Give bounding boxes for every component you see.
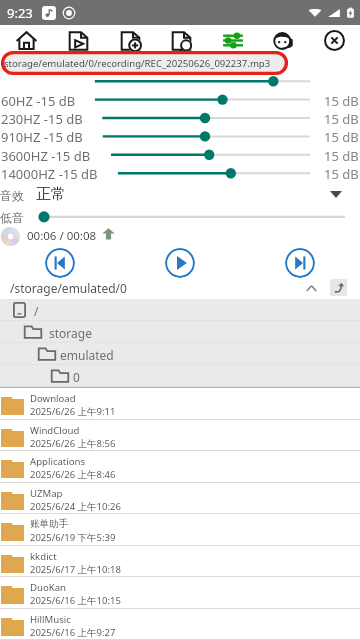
staticText: 15 dB	[324, 165, 359, 183]
button[interactable]: 0	[0, 365, 360, 387]
staticText: 2025/6/17 上午10:18	[30, 563, 121, 576]
button[interactable]: Play file	[52, 25, 104, 56]
staticText: WindCloud	[30, 424, 80, 437]
staticText: 2025/6/26 上午8:56	[30, 437, 116, 450]
staticText: 14000HZ -15 dB	[1, 165, 98, 183]
staticText: 音效	[0, 188, 24, 203]
staticText: 15 dB	[324, 110, 359, 128]
staticText: 2025/6/24 上午10:26	[30, 500, 121, 513]
button[interactable]: UZMap	[0, 483, 360, 514]
button[interactable]: 账单助手	[0, 514, 360, 546]
staticText: 60HZ -15 dB	[1, 92, 76, 110]
button[interactable]: Download	[0, 388, 360, 420]
staticText: 9:23	[7, 4, 33, 22]
staticText: storage	[49, 325, 92, 341]
button[interactable]: WindCloud	[0, 420, 360, 451]
staticText: 00:06 / 00:08	[27, 228, 97, 244]
button[interactable]: emulated	[0, 343, 360, 365]
staticText: 正常	[36, 185, 66, 204]
other: Sound effect menu	[330, 191, 342, 198]
button[interactable]: Go up	[330, 279, 347, 296]
button[interactable]: 音效	[0, 182, 360, 205]
staticText: 15 dB	[324, 92, 359, 110]
button[interactable]: Next	[285, 248, 315, 278]
button[interactable]: Search file	[156, 25, 207, 56]
staticText: 230HZ -15 dB	[1, 110, 83, 128]
staticText: UZMap	[30, 487, 63, 500]
button[interactable]: HillMusic	[0, 609, 360, 640]
staticText: storage/emulated/0/recording/REC_2025062…	[4, 57, 271, 70]
button[interactable]: Collapse	[302, 279, 320, 296]
button[interactable]: storage	[0, 321, 360, 343]
button[interactable]: Add file	[104, 25, 156, 56]
staticText: 2025/6/26 上午8:46	[30, 468, 116, 481]
staticText: 2025/6/26 上午9:11	[30, 405, 116, 418]
staticText: Download	[30, 392, 76, 405]
staticText: emulated	[60, 347, 114, 363]
button[interactable]: Close	[309, 25, 360, 56]
staticText: 账单助手	[30, 518, 69, 530]
staticText: 2025/6/16 上午10:15	[30, 594, 121, 607]
staticText: 910HZ -15 dB	[1, 128, 83, 146]
staticText: DuoKan	[30, 581, 66, 594]
staticText: kkdict	[30, 550, 57, 563]
staticText: 15 dB	[324, 147, 359, 165]
staticText: HillMusic	[30, 613, 71, 626]
button[interactable]: /	[0, 299, 360, 321]
staticText: 0	[73, 369, 80, 385]
staticText: 2025/6/16 上午9:27	[30, 626, 116, 639]
staticText: /storage/emulated/0	[10, 280, 127, 296]
button[interactable]: Applications	[0, 451, 360, 483]
other: Volume up	[102, 228, 115, 240]
staticText: 2025/6/19 下午5:39	[30, 531, 116, 544]
staticText: /	[34, 303, 39, 319]
button[interactable]: kkdict	[0, 546, 360, 577]
staticText: Applications	[30, 455, 86, 468]
button[interactable]: Home	[0, 25, 52, 56]
button[interactable]: Previous	[45, 248, 75, 278]
staticText: 低音	[0, 210, 24, 225]
button[interactable]: Equalizer	[207, 25, 258, 56]
button[interactable]: Support	[258, 25, 309, 56]
staticText: 3600HZ -15 dB	[1, 147, 91, 165]
button[interactable]: storage/emulated/0/recording/REC_2025062…	[1, 51, 288, 75]
button[interactable]: DuoKan	[0, 577, 360, 609]
staticText: 15 dB	[324, 128, 359, 146]
button[interactable]: Play	[165, 248, 195, 278]
